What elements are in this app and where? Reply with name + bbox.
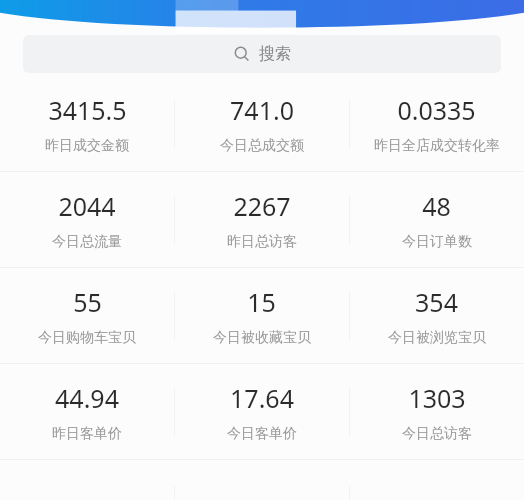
staticText: 2044 xyxy=(58,189,116,223)
staticText: 今日总流量 xyxy=(52,233,122,251)
staticText: 今日订单数 xyxy=(402,233,472,251)
staticText: 昨日总访客 xyxy=(227,233,297,251)
button[interactable]: 48 xyxy=(349,172,524,267)
staticText: 0.0335 xyxy=(397,93,476,127)
staticText: 55 xyxy=(73,285,102,319)
button[interactable]: 354 xyxy=(349,268,524,363)
staticText: 今日购物车宝贝 xyxy=(38,329,136,347)
staticText: 17.64 xyxy=(230,381,294,415)
button[interactable]: 3415.5 xyxy=(0,76,174,171)
staticText: 1303 xyxy=(408,381,466,415)
staticText: 搜索 xyxy=(259,44,291,64)
staticText: 今日总成交额 xyxy=(220,137,304,155)
staticText: 今日被浏览宝贝 xyxy=(388,329,486,347)
button[interactable]: 15 xyxy=(174,268,349,363)
staticText: 3415.5 xyxy=(48,93,127,127)
staticText: 今日客单价 xyxy=(227,425,297,443)
staticText: 今日被收藏宝贝 xyxy=(213,329,311,347)
staticText: 354 xyxy=(415,285,458,319)
staticText: 15 xyxy=(247,285,276,319)
staticText: 昨日全店成交转化率 xyxy=(374,137,500,155)
button[interactable]: 44.94 xyxy=(0,364,174,459)
button[interactable]: 55 xyxy=(0,268,174,363)
button[interactable]: 2267 xyxy=(174,172,349,267)
button[interactable]: 741.0 xyxy=(174,76,349,171)
button[interactable]: 17.64 xyxy=(174,364,349,459)
button[interactable]: 搜索 xyxy=(23,35,501,73)
button[interactable]: 2044 xyxy=(0,172,174,267)
staticText: 2267 xyxy=(233,189,291,223)
staticText: 44.94 xyxy=(55,381,119,415)
staticText: 昨日成交金额 xyxy=(45,137,129,155)
staticText: 741.0 xyxy=(230,93,294,127)
staticText: 今日总访客 xyxy=(402,425,472,443)
staticText: 48 xyxy=(422,189,451,223)
staticText: 昨日客单价 xyxy=(52,425,122,443)
button[interactable]: 1303 xyxy=(349,364,524,459)
button[interactable]: 0.0335 xyxy=(349,76,524,171)
